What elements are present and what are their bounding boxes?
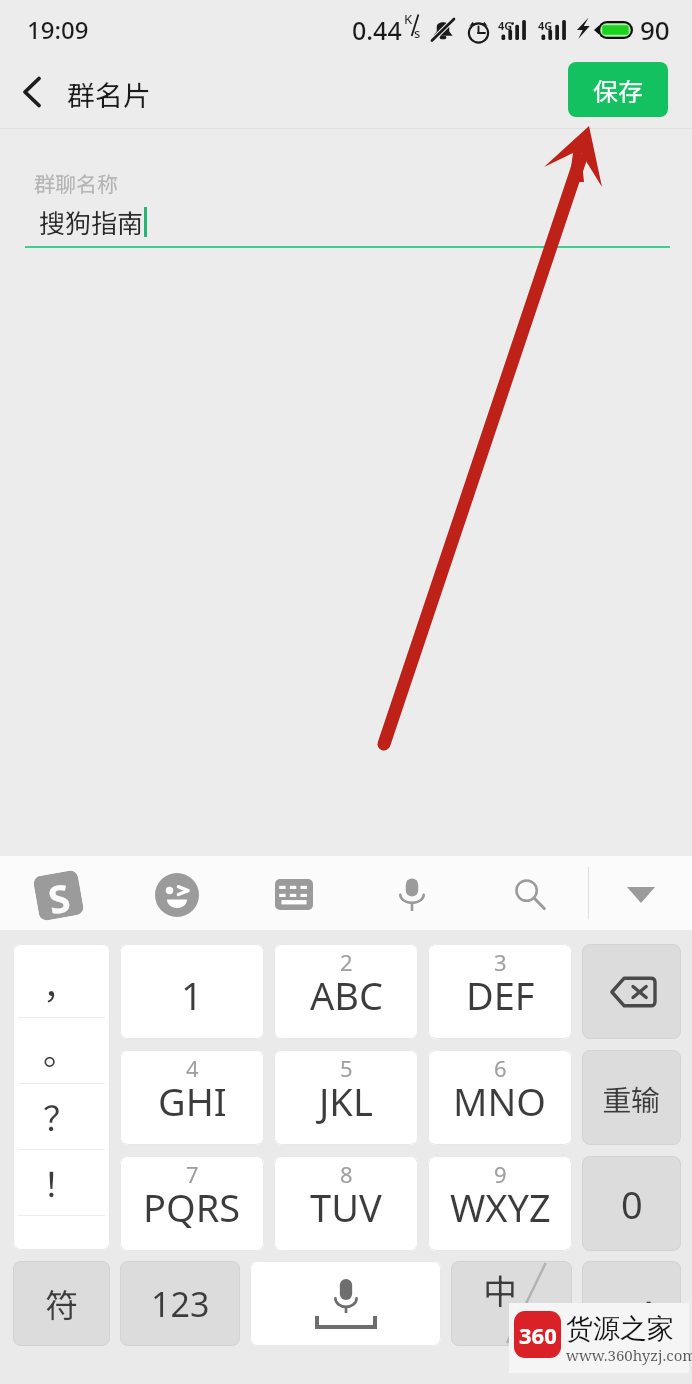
button[interactable]: 7 xyxy=(120,1156,264,1251)
staticText: 3 xyxy=(494,947,507,977)
staticText: 8 xyxy=(340,1159,353,1189)
staticText: TUV xyxy=(310,1181,382,1233)
staticText: 1 xyxy=(181,969,203,1021)
staticText: 群名片 xyxy=(67,74,152,115)
staticText: 360 xyxy=(519,1320,557,1350)
staticText: PQRS xyxy=(143,1181,241,1233)
staticText: 保存 xyxy=(593,72,644,108)
staticText: s xyxy=(414,24,421,42)
button[interactable]: 3 xyxy=(428,944,572,1039)
button[interactable]: Emoji xyxy=(118,856,236,930)
button[interactable]: Enter xyxy=(582,1261,681,1346)
button[interactable]: 4 xyxy=(120,1050,264,1145)
button[interactable]: 6 xyxy=(428,1050,572,1145)
staticText: 0.44 xyxy=(352,13,402,47)
staticText: 5 xyxy=(340,1053,353,1083)
button[interactable]: 123 xyxy=(120,1261,240,1346)
button[interactable]: 8 xyxy=(274,1156,418,1251)
button[interactable]: Delete xyxy=(582,944,681,1039)
staticText: 4G xyxy=(538,18,553,33)
button[interactable]: Sogou input method xyxy=(0,856,118,930)
button[interactable]: Search xyxy=(470,856,588,930)
button[interactable]: Space xyxy=(250,1261,441,1346)
staticText: ！ xyxy=(43,1158,77,1207)
staticText: 9 xyxy=(494,1159,507,1189)
staticText: 0 xyxy=(621,1178,643,1230)
staticText: 4G xyxy=(498,18,513,33)
staticText: 。 xyxy=(43,1026,77,1075)
staticText: 4 xyxy=(186,1053,199,1083)
button[interactable]: Voice input xyxy=(354,856,470,930)
staticText: 7 xyxy=(186,1159,199,1189)
button[interactable]: 2 xyxy=(274,944,418,1039)
button[interactable]: Chinese / English xyxy=(451,1261,572,1346)
button[interactable]: 保存 xyxy=(568,62,668,117)
button[interactable]: 5 xyxy=(274,1050,418,1145)
button[interactable]: Punctuation xyxy=(13,944,110,1250)
staticText: GHI xyxy=(158,1075,227,1127)
button[interactable]: Hide keyboard xyxy=(589,856,692,930)
staticText: www.360hyzj.com xyxy=(566,1345,692,1365)
button[interactable]: 9 xyxy=(428,1156,572,1251)
staticText: DEF xyxy=(466,969,535,1021)
staticText: 搜狗指南 xyxy=(39,203,144,241)
staticText: 货源之家 xyxy=(566,1312,674,1346)
staticText: K xyxy=(404,10,413,28)
staticText: 符 xyxy=(45,1280,78,1328)
staticText: 123 xyxy=(151,1281,210,1327)
staticText: 6 xyxy=(494,1053,507,1083)
staticText: MNO xyxy=(453,1075,547,1127)
staticText: 90 xyxy=(640,12,670,47)
staticText: WXYZ xyxy=(450,1181,551,1233)
staticText: 群聊名称 xyxy=(34,168,118,198)
staticText: S xyxy=(44,871,73,918)
staticText: 19:09 xyxy=(27,13,89,46)
staticText: JKL xyxy=(319,1075,373,1127)
staticText: ？ xyxy=(43,1092,77,1141)
staticText: 重输 xyxy=(602,1077,661,1119)
staticText: 中 xyxy=(483,1265,517,1314)
button[interactable]: Back xyxy=(0,58,56,126)
button[interactable]: 符 xyxy=(13,1261,110,1346)
staticText: 2 xyxy=(340,947,353,977)
button[interactable]: 1 xyxy=(120,944,264,1039)
button[interactable]: 重输 xyxy=(582,1050,681,1145)
button[interactable]: Keyboard layout xyxy=(236,856,354,930)
button[interactable]: 0 xyxy=(582,1156,681,1251)
staticText: ， xyxy=(43,960,77,1009)
staticText: ABC xyxy=(310,969,383,1021)
